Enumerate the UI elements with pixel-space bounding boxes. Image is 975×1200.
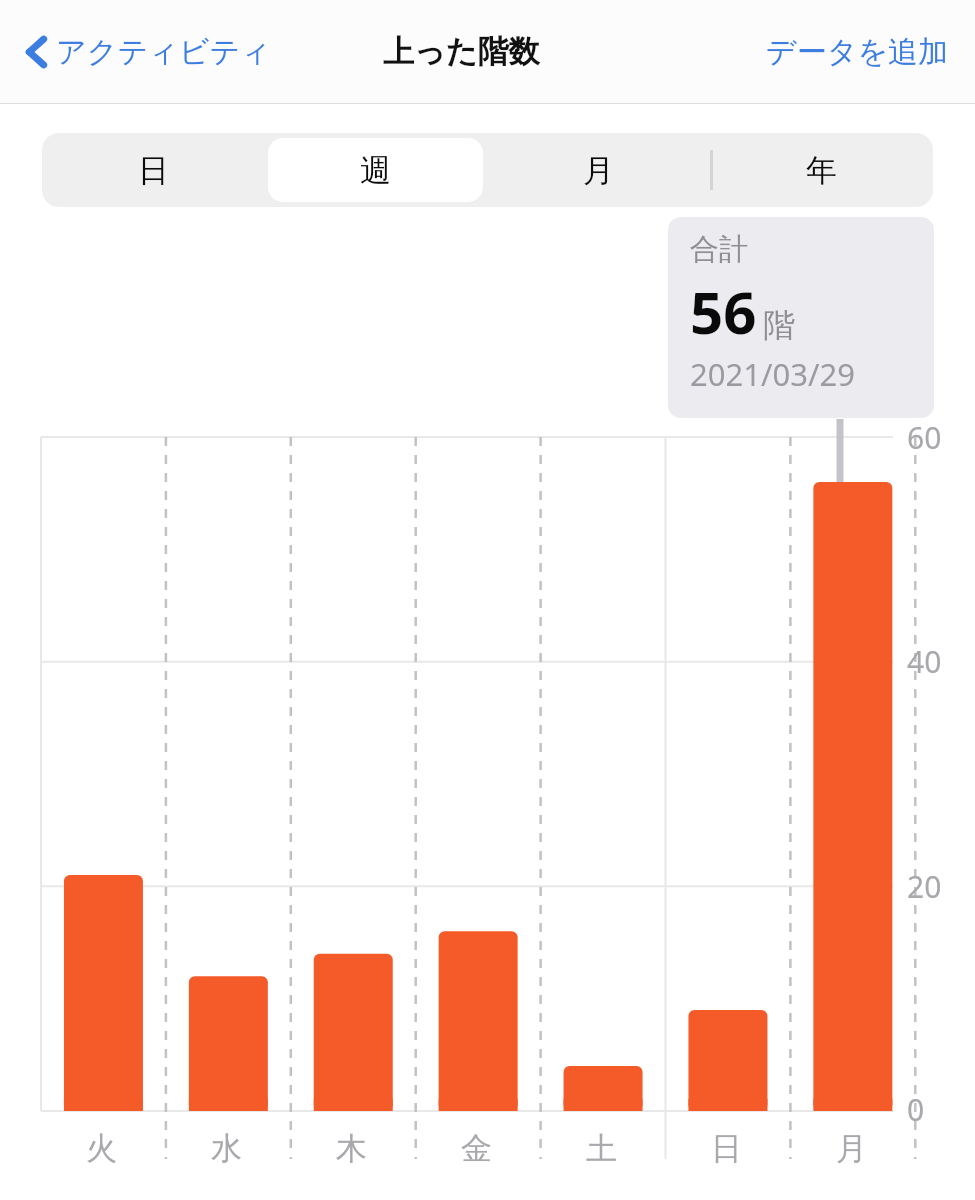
staticText: 56 bbox=[690, 272, 757, 351]
staticText: 土 bbox=[586, 1129, 617, 1168]
staticText: 20 bbox=[907, 866, 942, 907]
staticText: 月 bbox=[836, 1129, 867, 1168]
staticText: 0 bbox=[907, 1089, 925, 1130]
staticText: 階 bbox=[763, 305, 795, 345]
staticText: 月 bbox=[583, 151, 614, 190]
staticText: 日 bbox=[711, 1129, 742, 1168]
button[interactable]: アクティビティ bbox=[18, 24, 277, 80]
staticText: 金 bbox=[461, 1129, 492, 1168]
staticText: 日 bbox=[138, 151, 169, 190]
staticText: 上った階数 bbox=[383, 32, 540, 71]
staticText: 合計 bbox=[690, 231, 748, 268]
button[interactable]: 月 bbox=[491, 138, 706, 202]
staticText: 年 bbox=[806, 151, 837, 190]
button[interactable]: 日 bbox=[46, 138, 260, 202]
staticText: 火 bbox=[86, 1129, 117, 1168]
staticText: データを追加 bbox=[766, 33, 949, 71]
staticText: 40 bbox=[907, 641, 942, 682]
button[interactable]: 年 bbox=[714, 138, 929, 202]
staticText: 60 bbox=[907, 417, 942, 458]
button[interactable]: 合計 56 階 2021/03/29 bbox=[668, 217, 934, 418]
staticText: 水 bbox=[211, 1129, 242, 1168]
staticText: 週 bbox=[360, 151, 391, 190]
button[interactable]: データを追加 bbox=[760, 25, 955, 79]
staticText: アクティビティ bbox=[56, 33, 271, 71]
staticText: 木 bbox=[336, 1129, 367, 1168]
button[interactable]: 週 bbox=[268, 138, 483, 202]
staticText: 2021/03/29 bbox=[690, 353, 855, 395]
